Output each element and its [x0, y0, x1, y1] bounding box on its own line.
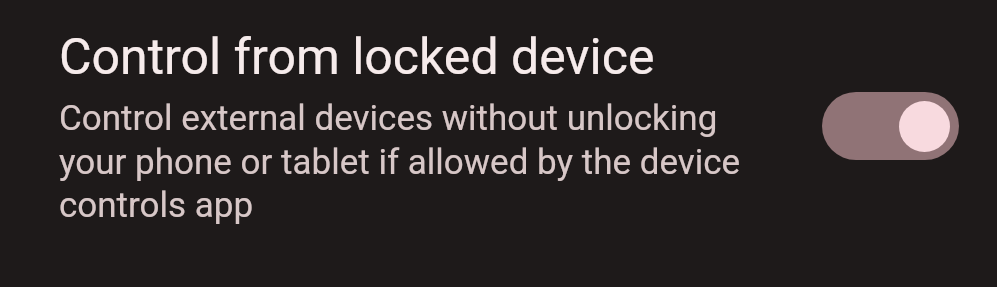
- staticText: Control from locked device: [59, 28, 655, 87]
- button[interactable]: Control from locked device: [0, 0, 800, 287]
- staticText: Control external devices without unlocki…: [59, 98, 759, 226]
- button[interactable]: Control from locked device: [822, 92, 959, 160]
